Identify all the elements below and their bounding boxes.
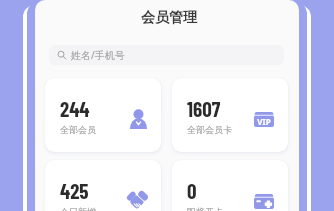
other: Member cards <box>254 112 274 127</box>
staticText: 姓名/手机号 <box>71 48 125 62</box>
staticText: 会员管理 <box>37 9 299 27</box>
button[interactable]: 0 <box>172 160 288 211</box>
other: Cards about to open <box>254 194 274 209</box>
staticText: 今日新增 <box>60 206 96 211</box>
button[interactable]: 244 <box>45 78 161 152</box>
staticText: 425 <box>60 178 89 203</box>
staticText: 全部会员卡 <box>187 124 232 135</box>
button[interactable]: 1607 <box>172 78 288 152</box>
other: Members <box>130 109 147 129</box>
staticText: VIP <box>254 116 274 127</box>
other: New members today <box>127 192 147 210</box>
button[interactable]: 425 <box>45 160 161 211</box>
staticText: 244 <box>60 96 90 121</box>
button[interactable]: 姓名/手机号 <box>49 45 284 65</box>
staticText: 全部会员 <box>60 124 96 135</box>
staticText: 即将开卡 <box>187 206 223 211</box>
staticText: 1607 <box>187 96 221 121</box>
staticText: 0 <box>187 178 197 203</box>
